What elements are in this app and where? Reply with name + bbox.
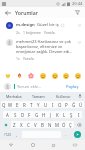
button[interactable]: T — [28, 101, 35, 108]
staticText: E — [16, 102, 19, 108]
staticText: C — [27, 122, 30, 128]
button[interactable]: Filter — [73, 8, 82, 17]
button[interactable]: Back — [0, 140, 22, 150]
staticText: I — [52, 102, 54, 108]
button[interactable]: Back — [3, 8, 12, 17]
button[interactable]: Heart emoji — [4, 72, 11, 79]
staticText: Y — [37, 102, 40, 108]
staticText: Paylaş — [66, 84, 79, 89]
staticText: B — [41, 122, 44, 128]
staticText: Ç — [69, 122, 72, 128]
button[interactable]: Paylaş — [64, 83, 81, 90]
staticText: Yorum ekle... — [17, 84, 42, 89]
staticText: mehmet23 Harikasınız ve çok başarılısını… — [16, 39, 74, 54]
button[interactable]: Shift — [1, 121, 11, 128]
button[interactable]: V — [32, 121, 39, 128]
button[interactable]: Flame emoji — [16, 72, 23, 79]
button[interactable]: U — [42, 101, 49, 108]
button[interactable]: . — [62, 131, 70, 138]
staticText: V — [34, 122, 37, 128]
staticText: N — [48, 122, 52, 128]
staticText: Kullanıcı — [56, 94, 71, 99]
button[interactable]: I — [49, 101, 56, 108]
button[interactable]: I — [75, 111, 82, 118]
button[interactable]: G — [33, 111, 40, 118]
button[interactable]: X — [18, 121, 25, 128]
button[interactable]: Emoji — [62, 72, 69, 79]
button[interactable]: Send — [70, 131, 84, 138]
button[interactable]: Emoji — [39, 72, 46, 79]
button[interactable]: Emoji — [74, 72, 81, 79]
button[interactable]: Voice input — [76, 92, 83, 100]
button[interactable]: B — [39, 121, 46, 128]
staticText: K — [56, 112, 59, 118]
button[interactable]: , — [13, 131, 21, 138]
button[interactable]: Ş — [68, 111, 75, 118]
staticText: Tamam — [32, 94, 45, 99]
staticText: A — [6, 112, 9, 118]
button[interactable]: Kullanıcı — [51, 92, 76, 100]
staticText: Yanıtla — [44, 30, 55, 35]
button[interactable]: R — [21, 101, 28, 108]
staticText: Güzel bir iş — [37, 22, 59, 28]
button[interactable]: Merhaba — [2, 92, 26, 100]
button[interactable]: Q — [1, 101, 7, 108]
staticText: I — [78, 112, 80, 118]
button[interactable]: E — [14, 101, 21, 108]
staticText: G — [35, 112, 39, 118]
staticText: . — [65, 132, 67, 138]
button[interactable]: S — [11, 111, 19, 118]
staticText: 1 beğenme — [23, 30, 41, 35]
staticText: 20:44 — [72, 1, 83, 6]
button[interactable]: Ğ — [70, 101, 77, 108]
staticText: m.design — [16, 22, 35, 28]
button[interactable]: D — [19, 111, 26, 118]
button[interactable]: Emoji — [51, 72, 58, 79]
button[interactable]: Like — [76, 22, 82, 28]
staticText: P — [65, 102, 68, 108]
button[interactable]: Z — [11, 121, 18, 128]
button[interactable]: J — [47, 111, 54, 118]
staticText: Ö — [62, 122, 66, 128]
staticText: R — [23, 102, 26, 108]
button[interactable]: Tamam — [26, 92, 51, 100]
button[interactable]: C — [25, 121, 32, 128]
button[interactable]: Like — [76, 39, 82, 45]
button[interactable]: mehmet23 Harikasınız ve çok başarılısını… — [0, 37, 85, 63]
staticText: L — [63, 112, 66, 118]
button[interactable]: Ü — [77, 101, 84, 108]
staticText: T — [30, 102, 33, 108]
button[interactable]: m.design — [0, 18, 85, 37]
button[interactable]: K — [54, 111, 61, 118]
button[interactable]: H — [40, 111, 47, 118]
button[interactable]: F — [26, 111, 33, 118]
button[interactable]: Ç — [67, 121, 74, 128]
button[interactable]: W — [7, 101, 14, 108]
button[interactable]: N — [46, 121, 53, 128]
staticText: Ş — [70, 112, 73, 118]
staticText: Yanıtla — [23, 56, 34, 61]
button[interactable]: Home — [22, 140, 43, 150]
staticText: 1s — [16, 56, 20, 61]
button[interactable]: ?123 — [1, 131, 13, 138]
staticText: Ğ — [72, 102, 76, 108]
button[interactable]: A — [3, 111, 11, 118]
button[interactable]: Flower emoji — [27, 72, 34, 79]
staticText: Yorumlar — [15, 9, 38, 16]
button[interactable]: Y — [35, 101, 42, 108]
staticText: Merhaba — [6, 94, 22, 99]
button[interactable]: L — [61, 111, 68, 118]
button[interactable]: P — [63, 101, 70, 108]
button[interactable]: Keyboard — [64, 140, 85, 150]
staticText: , — [16, 132, 18, 138]
button[interactable]: Ö — [60, 121, 67, 128]
button[interactable]: Backspace — [74, 121, 84, 128]
button[interactable]: M — [53, 121, 60, 128]
staticText: J — [50, 112, 52, 118]
staticText: Ü — [79, 102, 83, 108]
staticText: U — [44, 102, 48, 108]
button[interactable]: O — [56, 101, 63, 108]
button[interactable]: Recents — [43, 140, 64, 150]
button[interactable]: Yorum ekle... — [14, 84, 64, 89]
